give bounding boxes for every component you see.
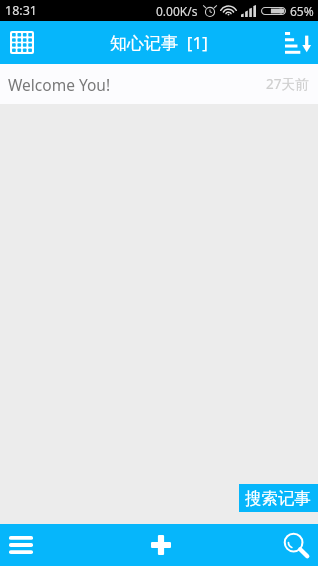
staticText: Welcome You! xyxy=(8,74,111,95)
button[interactable]: Sort xyxy=(278,21,318,64)
button[interactable]: Grid view xyxy=(0,21,44,64)
button[interactable]: 搜索记事 xyxy=(239,484,318,512)
staticText: 18:31 xyxy=(5,2,37,19)
staticText: 27天前 xyxy=(266,75,309,93)
staticText: 搜索记事 xyxy=(245,488,311,509)
button[interactable]: Menu xyxy=(0,524,42,566)
button[interactable]: Add note xyxy=(42,524,274,566)
staticText: 0.00K/s xyxy=(156,3,198,19)
button[interactable]: Search xyxy=(274,524,318,566)
button[interactable]: Welcome You! xyxy=(0,64,318,104)
staticText: 65% xyxy=(290,3,314,19)
staticText: 知心记事 [1] xyxy=(110,31,208,54)
